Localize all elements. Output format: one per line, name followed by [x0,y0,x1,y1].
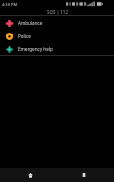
staticText: SOS | 112 [47,9,68,15]
button[interactable]: Home [24,169,36,181]
button[interactable]: Ambulance [0,16,114,29]
button[interactable]: Recents [78,169,90,181]
staticText: Ambulance [18,20,43,26]
button[interactable]: Police [0,29,114,42]
button[interactable]: Emergency help [0,42,114,55]
staticText: 4:35 PM [2,2,18,7]
staticText: Emergency help [18,46,53,52]
staticText: Police [18,33,31,39]
